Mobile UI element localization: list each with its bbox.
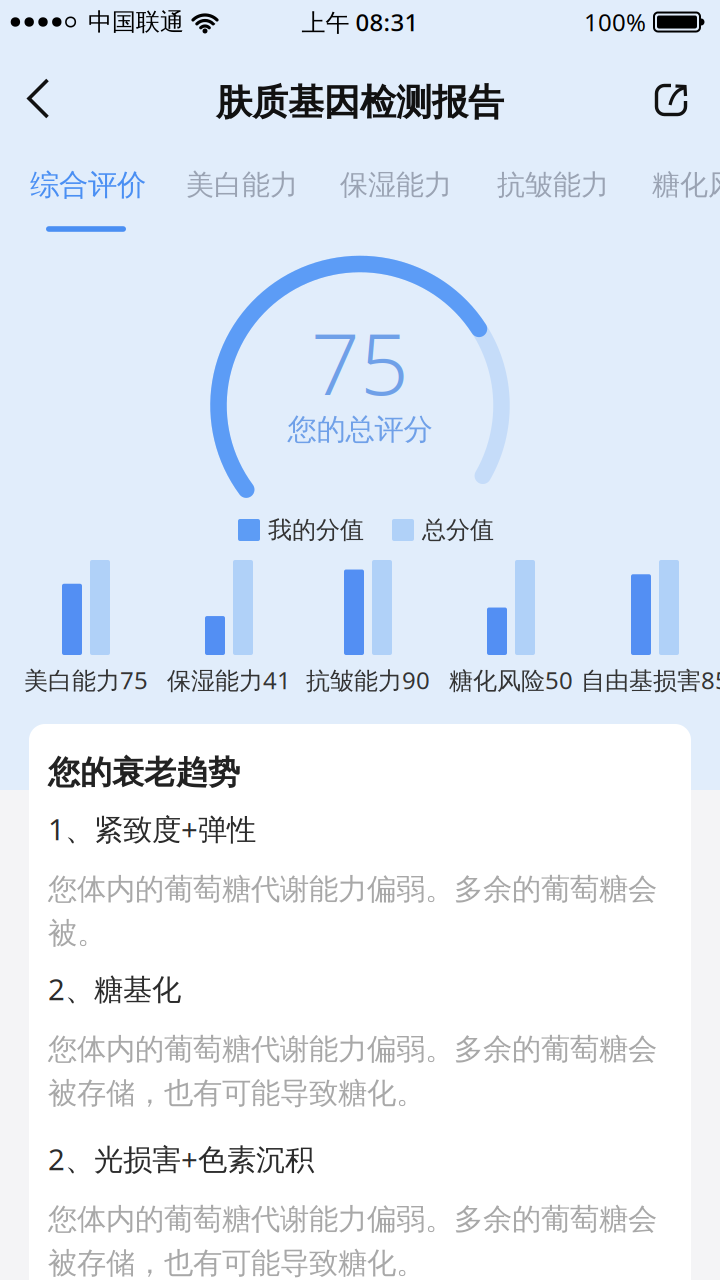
button[interactable] (649, 78, 693, 122)
staticText: 自由基损害85 (581, 664, 720, 696)
button[interactable]: 糖化风险 (652, 168, 720, 202)
staticText: 美白能力 (186, 168, 298, 202)
staticText: 保湿能力41 (167, 664, 291, 696)
staticText: 上午 08:31 (301, 6, 418, 38)
staticText: 您体内的葡萄糖代谢能力偏弱。多余的葡萄糖会被存储，也有可能导致糖化。 (48, 1031, 657, 1111)
staticText: 您体内的葡萄糖代谢能力偏弱。多余的葡萄糖会被存储，也有可能导致糖化。 (48, 1201, 657, 1280)
staticText: 2、糖基化 (48, 969, 181, 1008)
staticText: 您的衰老趋势 (48, 753, 240, 792)
staticText: 抗皱能力90 (306, 664, 430, 696)
staticText: 综合评价 (30, 167, 146, 203)
staticText: 抗皱能力 (497, 168, 609, 202)
staticText: 中国联通 (88, 7, 184, 37)
button[interactable]: 抗皱能力 (497, 168, 609, 202)
staticText: 我的分值 (268, 515, 364, 545)
staticText: 保湿能力 (340, 168, 452, 202)
staticText: 您体内的葡萄糖代谢能力偏弱。多余的葡萄糖会被。 (48, 871, 657, 951)
button[interactable] (18, 71, 58, 127)
button[interactable]: 保湿能力 (340, 168, 452, 202)
staticText: 总分值 (422, 515, 494, 545)
staticText: 糖化风险50 (449, 664, 573, 696)
staticText: 2、光损害+色素沉积 (48, 1139, 314, 1178)
button[interactable]: 综合评价 (30, 167, 146, 203)
staticText: 肤质基因检测报告 (216, 80, 504, 125)
staticText: 100% (584, 6, 646, 38)
staticText: 75 (311, 305, 409, 419)
staticText: 1、紧致度+弹性 (48, 809, 256, 848)
staticText: 您的总评分 (287, 411, 432, 447)
staticText: 糖化风险 (652, 168, 720, 202)
button[interactable]: 美白能力 (186, 168, 298, 202)
staticText: 美白能力75 (24, 664, 148, 696)
